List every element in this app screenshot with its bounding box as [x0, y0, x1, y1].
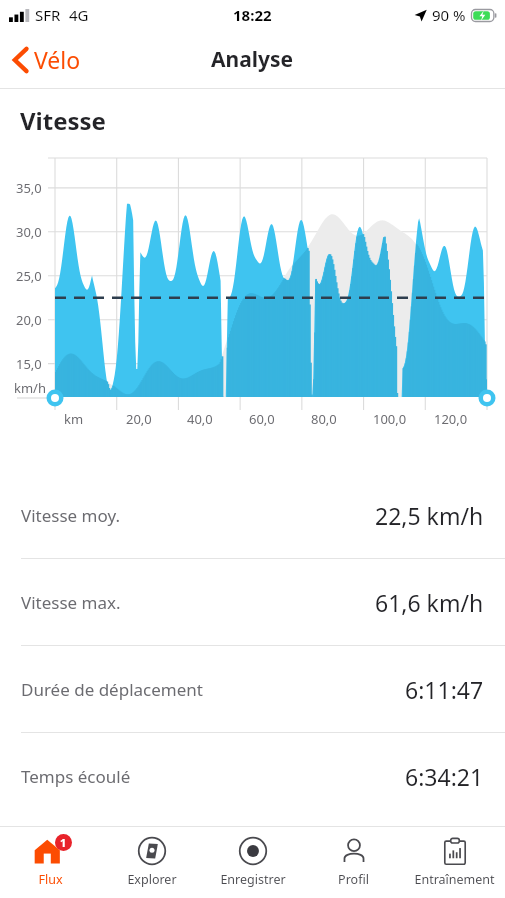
staticText: 30,0: [16, 223, 42, 241]
staticText: Vitesse: [20, 104, 106, 137]
staticText: 20,0: [126, 410, 152, 428]
staticText: Temps écoulé: [21, 765, 131, 788]
staticText: 80,0: [311, 410, 337, 428]
staticText: 15,0: [16, 355, 42, 373]
staticText: Profil: [338, 871, 369, 888]
staticText: km: [64, 410, 84, 428]
staticText: Enregistrer: [220, 871, 286, 888]
staticText: Durée de déplacement: [21, 678, 203, 701]
staticText: 25,0: [16, 267, 42, 285]
staticText: 20,0: [16, 311, 42, 329]
staticText: Analyse: [211, 45, 294, 74]
staticText: 60,0: [249, 410, 275, 428]
staticText: 40,0: [187, 410, 213, 428]
staticText: 61,6 km/h: [375, 587, 484, 618]
staticText: 6:34:21: [405, 761, 484, 792]
staticText: 6:11:47: [405, 674, 484, 705]
button[interactable]: Back: [0, 36, 95, 83]
other: Explorer: [135, 834, 169, 868]
staticText: Vitesse moy.: [21, 504, 120, 527]
other: Entraînement: [438, 834, 472, 868]
staticText: Vélo: [34, 44, 81, 75]
staticText: 22,5 km/h: [375, 500, 484, 531]
staticText: Explorer: [127, 871, 177, 888]
staticText: 100,0: [373, 410, 407, 428]
staticText: Entraînement: [414, 871, 495, 888]
button[interactable]: Profil: [303, 827, 404, 898]
button[interactable]: Durée de déplacement: [0, 646, 505, 733]
staticText: 90 %: [432, 5, 466, 25]
button[interactable]: Enregistrer: [202, 827, 303, 898]
button[interactable]: Vitesse max.: [0, 559, 505, 646]
staticText: 35,0: [16, 179, 42, 197]
staticText: 120,0: [434, 410, 468, 428]
staticText: 4G: [69, 5, 89, 25]
button[interactable]: Vitesse moy.: [0, 472, 505, 559]
staticText: km/h: [14, 379, 46, 397]
button[interactable]: Explorer: [101, 827, 202, 898]
other: Back: [13, 47, 28, 73]
other: Profil: [337, 834, 371, 868]
button[interactable]: Temps écoulé: [0, 733, 505, 819]
staticText: SFR: [35, 5, 61, 25]
staticText: 1: [60, 835, 67, 850]
staticText: Flux: [38, 871, 63, 888]
button[interactable]: Entraînement: [404, 827, 505, 898]
other: Enregistrer: [236, 834, 270, 868]
staticText: 18:22: [233, 5, 272, 25]
staticText: Vitesse max.: [21, 591, 121, 614]
button[interactable]: 1: [0, 827, 101, 898]
